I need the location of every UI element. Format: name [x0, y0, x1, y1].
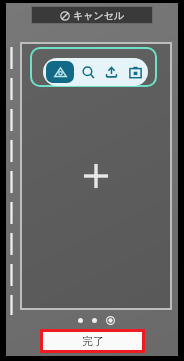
button[interactable]: Search: [78, 62, 98, 82]
staticText: 完了: [82, 334, 104, 348]
button[interactable]: キャンセル: [31, 6, 153, 24]
button[interactable]: Camera: [125, 62, 145, 82]
button[interactable]: Upload: [101, 62, 121, 82]
button[interactable]: Lens: [46, 61, 74, 83]
staticText: キャンセル: [73, 9, 125, 22]
button[interactable]: 完了: [43, 332, 142, 350]
